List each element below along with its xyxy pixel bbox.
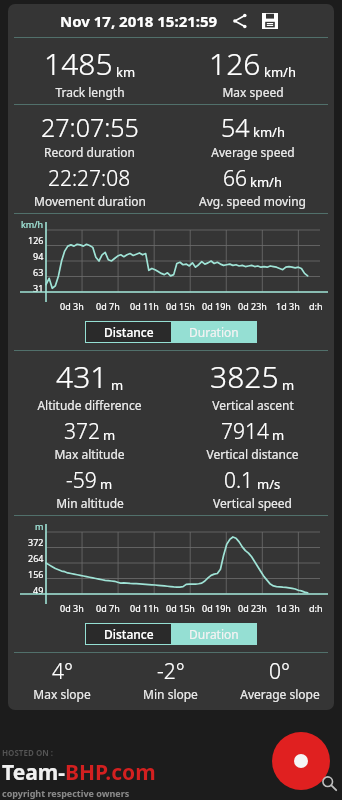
staticText: 156: [28, 568, 44, 580]
staticText: Team-: [2, 758, 65, 787]
staticText: 0d 19h: [202, 602, 231, 614]
staticText: Duration: [189, 626, 239, 642]
button[interactable]: Record: [272, 732, 330, 790]
staticText: d:h: [309, 602, 323, 614]
button[interactable]: Zoom: [318, 772, 340, 794]
staticText: 0d 19h: [202, 300, 231, 312]
staticText: Avg. speed moving: [199, 193, 306, 209]
staticText: km/h: [250, 173, 282, 191]
staticText: 0d 23h: [238, 602, 267, 614]
staticText: -59: [66, 466, 97, 495]
staticText: BHP.com: [65, 758, 156, 787]
staticText: HOSTED ON :: [2, 747, 54, 758]
staticText: 0d 15h: [166, 300, 195, 312]
staticText: Vertical speed: [213, 495, 292, 511]
staticText: 0d 7h: [96, 300, 120, 312]
staticText: 4°: [52, 657, 73, 686]
staticText: 22:27:08: [48, 164, 131, 193]
staticText: m: [272, 426, 285, 444]
staticText: 66: [223, 164, 247, 193]
staticText: m: [103, 426, 116, 444]
staticText: 31: [33, 282, 44, 294]
staticText: Track length: [55, 84, 125, 100]
staticText: 0d 15h: [166, 602, 195, 614]
staticText: 0d 11h: [130, 300, 159, 312]
staticText: 0d 23h: [238, 300, 267, 312]
staticText: Altitude difference: [37, 397, 142, 413]
staticText: 264: [28, 552, 44, 564]
staticText: Max speed: [222, 84, 284, 100]
staticText: Min altitude: [56, 495, 124, 511]
staticText: 0d 7h: [96, 602, 120, 614]
staticText: 7914: [221, 417, 269, 446]
staticText: Record duration: [44, 144, 135, 160]
staticText: Distance: [104, 324, 154, 340]
staticText: m: [100, 475, 113, 493]
staticText: Movement duration: [34, 193, 146, 209]
staticText: Vertical ascent: [212, 397, 294, 413]
button[interactable]: Distance: [86, 624, 171, 644]
staticText: 1d 3h: [276, 300, 300, 312]
staticText: -2°: [157, 657, 185, 686]
staticText: 49: [33, 584, 44, 596]
staticText: Duration: [189, 324, 239, 340]
staticText: Vertical distance: [206, 446, 299, 462]
staticText: Average slope: [240, 686, 320, 702]
staticText: Max altitude: [54, 446, 125, 462]
staticText: 0d 11h: [130, 602, 159, 614]
staticText: 0.1: [224, 466, 254, 495]
staticText: km/h: [264, 63, 296, 81]
button[interactable]: Distance: [86, 322, 171, 342]
staticText: 0d 3h: [60, 602, 84, 614]
button[interactable]: Share: [228, 9, 252, 33]
staticText: m/s: [257, 475, 281, 493]
staticText: Average speed: [211, 144, 295, 160]
staticText: m: [282, 376, 295, 394]
staticText: 0d 3h: [60, 300, 84, 312]
staticText: 431: [56, 356, 108, 397]
staticText: copyright respective owners: [2, 787, 130, 799]
staticText: km/h: [21, 218, 44, 230]
staticText: 372: [28, 536, 44, 548]
staticText: m: [35, 520, 44, 532]
staticText: Distance: [104, 626, 154, 642]
staticText: 63: [33, 266, 44, 278]
staticText: km/h: [253, 123, 285, 141]
staticText: 372: [64, 417, 100, 446]
staticText: m: [111, 376, 124, 394]
staticText: Min slope: [143, 686, 198, 702]
staticText: Nov 17, 2018 15:21:59: [60, 11, 218, 31]
staticText: 0°: [269, 657, 290, 686]
staticText: d:h: [309, 300, 323, 312]
staticText: 3825: [210, 356, 279, 397]
staticText: 1d 3h: [276, 602, 300, 614]
staticText: km: [116, 63, 136, 81]
staticText: 54: [221, 110, 250, 144]
staticText: 1485: [44, 43, 113, 84]
button[interactable]: Duration: [171, 624, 256, 644]
button[interactable]: Save: [258, 9, 282, 33]
staticText: Max slope: [33, 686, 91, 702]
staticText: 94: [33, 250, 44, 262]
staticText: 126: [209, 43, 261, 84]
button[interactable]: Duration: [171, 322, 256, 342]
staticText: 27:07:55: [41, 110, 139, 144]
staticText: 126: [28, 234, 44, 246]
